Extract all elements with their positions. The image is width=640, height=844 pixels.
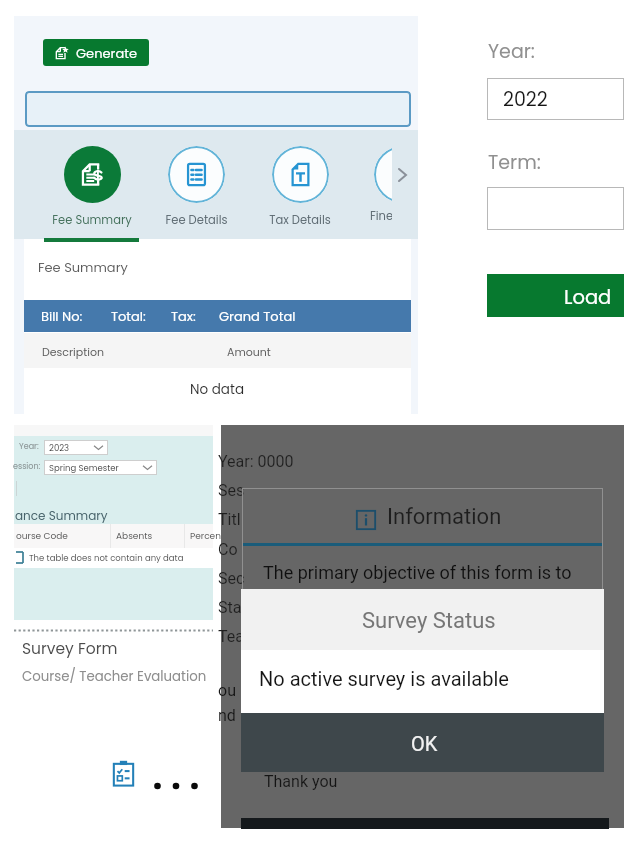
button[interactable]: Next tabs (388, 161, 416, 189)
staticText: Survey Form (22, 638, 227, 660)
staticText: Information (387, 504, 502, 530)
staticText: Spring Semester (49, 462, 119, 474)
staticText: Total: (111, 307, 146, 325)
button[interactable]: 2023 (44, 440, 108, 455)
staticText: Load (564, 284, 612, 311)
staticText: Sta (218, 598, 242, 617)
staticText: Titl (218, 510, 241, 529)
staticText: Fine Details (370, 208, 392, 224)
staticText: Generate (76, 44, 137, 62)
button[interactable]: Fee Details (146, 146, 246, 228)
staticText: Percen (190, 530, 221, 543)
staticText: ourse Code (16, 530, 68, 543)
button[interactable] (25, 91, 411, 127)
staticText: Course/ Teacher Evaluation (22, 667, 207, 686)
button[interactable]: Survey form (109, 759, 138, 795)
staticText: nd (218, 706, 236, 725)
staticText: 2023 (49, 442, 70, 454)
staticText: Bill No: (41, 307, 83, 325)
staticText: Fee Details (165, 212, 228, 228)
staticText: Description (42, 344, 105, 359)
button[interactable]: OK (241, 713, 604, 772)
staticText: Year: (19, 441, 39, 452)
button[interactable]: Generate (43, 39, 149, 66)
staticText: Year: 0000 (218, 452, 294, 471)
staticText: Amount (227, 344, 271, 359)
button[interactable]: 2022 (487, 78, 624, 120)
staticText: No data (190, 380, 245, 399)
button[interactable]: Fine Details (374, 146, 418, 203)
button[interactable]: Load (487, 274, 624, 317)
staticText: Ses (218, 481, 245, 500)
staticText: Fee Summary (38, 258, 128, 276)
staticText: Fee Summary (52, 212, 132, 228)
staticText: ance Summary (15, 507, 108, 524)
staticText: Co (218, 540, 238, 559)
staticText: Thank you (264, 772, 338, 791)
staticText: 2022 (503, 86, 548, 113)
staticText: ou (218, 681, 236, 700)
staticText: ession: (13, 461, 41, 472)
staticText: Survey Status (362, 608, 496, 634)
staticText: Tea (218, 627, 244, 646)
staticText: No active survey is available (259, 667, 509, 690)
staticText: Tax Details (269, 212, 331, 228)
staticText: Term: (488, 149, 541, 176)
staticText: Tax: (171, 307, 196, 325)
staticText: OK (411, 732, 438, 755)
staticText: The table does not contain any data (29, 552, 184, 564)
button[interactable]: Spring Semester (44, 460, 157, 475)
staticText: Year: (488, 38, 535, 65)
staticText: Grand Total (219, 307, 296, 325)
button[interactable] (487, 187, 624, 230)
button[interactable]: Fee Summary (42, 146, 142, 228)
button[interactable]: Tax Details (250, 146, 350, 228)
staticText: Absents (116, 530, 153, 543)
staticText: Sec (218, 569, 245, 588)
staticText: The primary objective of this form is to (263, 562, 572, 583)
